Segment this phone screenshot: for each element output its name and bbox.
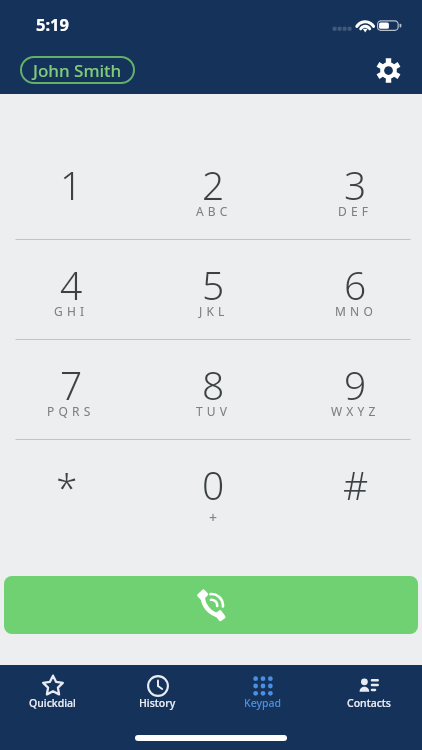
staticText: Keypad: [244, 696, 282, 710]
staticText: 3: [344, 158, 367, 211]
button[interactable]: Quickdial: [0, 665, 105, 717]
staticText: GHI: [54, 303, 89, 319]
staticText: 5: [202, 258, 225, 311]
button[interactable]: 1: [0, 139, 140, 239]
button[interactable]: 0: [140, 439, 281, 539]
staticText: 0: [202, 458, 225, 511]
staticText: WXYZ: [331, 403, 380, 419]
staticText: *: [56, 460, 78, 513]
staticText: 2: [202, 158, 225, 211]
button[interactable]: Keypad: [210, 665, 316, 717]
button[interactable]: John Smith: [20, 56, 135, 84]
staticText: #: [343, 458, 369, 511]
staticText: 1: [60, 158, 83, 211]
button[interactable]: History: [105, 665, 210, 717]
button[interactable]: 8: [140, 339, 281, 439]
staticText: PQRS: [47, 403, 95, 419]
staticText: 8: [202, 358, 225, 411]
staticText: 5:19: [36, 13, 69, 35]
staticText: Quickdial: [29, 696, 76, 710]
staticText: +: [209, 508, 218, 527]
staticText: Contacts: [347, 696, 391, 710]
staticText: 4: [60, 258, 83, 311]
button[interactable]: 6: [281, 239, 422, 339]
staticText: History: [139, 696, 176, 710]
button[interactable]: 3: [281, 139, 422, 239]
button[interactable]: Call: [4, 576, 418, 634]
staticText: 9: [344, 358, 367, 411]
staticText: TUV: [196, 403, 232, 419]
button[interactable]: 5: [140, 239, 281, 339]
button[interactable]: 7: [0, 339, 140, 439]
staticText: DEF: [338, 203, 373, 219]
button[interactable]: 2: [140, 139, 281, 239]
staticText: ABC: [196, 203, 232, 219]
staticText: MNO: [335, 303, 377, 319]
button[interactable]: #: [281, 439, 422, 539]
button[interactable]: 4: [0, 239, 140, 339]
staticText: 7: [60, 358, 83, 411]
button[interactable]: 9: [281, 339, 422, 439]
button[interactable]: Contacts: [316, 665, 422, 717]
button[interactable]: *: [0, 439, 140, 539]
staticText: 6: [344, 258, 367, 311]
button[interactable]: Settings: [366, 48, 410, 92]
staticText: John Smith: [33, 59, 122, 82]
staticText: JKL: [199, 303, 229, 319]
